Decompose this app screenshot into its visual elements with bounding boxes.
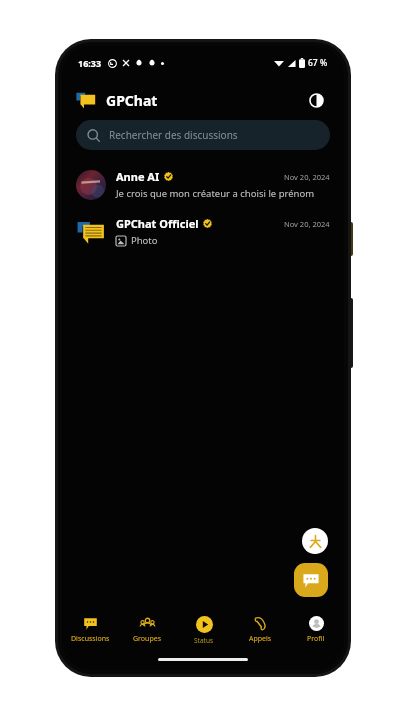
staticText: Nov 20, 2024 — [284, 219, 330, 229]
staticText: Anne AI — [116, 169, 160, 184]
button[interactable]: Status — [176, 609, 232, 651]
button[interactable]: Anne AI — [62, 164, 344, 205]
staticText: Photo — [131, 234, 158, 247]
button[interactable]: Groupes — [119, 609, 176, 651]
staticText: 67 % — [308, 57, 328, 69]
button[interactable]: Rechercher des discussions — [76, 120, 330, 150]
staticText: Profil — [307, 634, 325, 644]
button[interactable]: Nouvelle discussion — [294, 563, 328, 597]
button[interactable]: Discussions — [62, 609, 119, 651]
staticText: Discussions — [71, 634, 110, 644]
staticText: Groupes — [133, 634, 162, 644]
staticText: Status — [194, 636, 214, 645]
button[interactable]: Appels — [232, 609, 288, 651]
staticText: Je crois que mon créateur a choisi le pr… — [116, 187, 315, 200]
staticText: 16:33 — [78, 57, 102, 69]
staticText: Appels — [249, 634, 272, 644]
button[interactable]: Profil — [288, 609, 344, 651]
staticText: Rechercher des discussions — [109, 128, 238, 142]
button[interactable]: GPChat Officiel — [62, 211, 344, 252]
button[interactable]: Assistant IA — [302, 528, 328, 554]
button[interactable]: Changer le thème — [302, 86, 330, 114]
staticText: GPChat Officiel — [116, 216, 199, 231]
staticText: Nov 20, 2024 — [284, 172, 330, 182]
staticText: GPChat — [106, 91, 158, 110]
